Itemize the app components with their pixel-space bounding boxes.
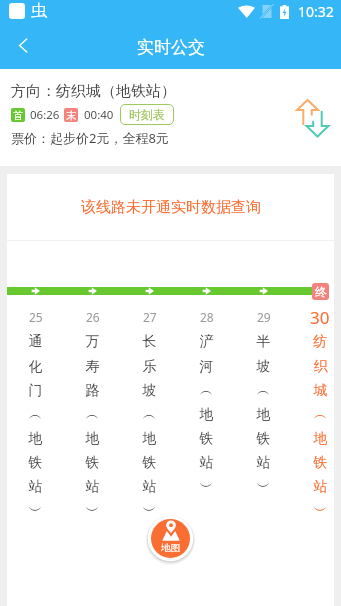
button[interactable]: Back <box>0 22 47 69</box>
staticText: 末 <box>66 109 76 122</box>
staticText: 通化门︵地铁站︶ <box>28 333 43 519</box>
staticText: 半坡︵地铁站︶ <box>256 333 271 495</box>
staticText: 10:32 <box>298 2 334 21</box>
staticText: 00:40 <box>84 107 114 123</box>
staticText: 06:26 <box>30 107 60 123</box>
staticText: 方向：纺织城（地铁站） <box>11 82 176 101</box>
staticText: 长乐坡︵地铁站︶ <box>142 333 157 519</box>
button[interactable]: 26 <box>64 304 121 519</box>
staticText: 30 <box>310 306 330 329</box>
button[interactable]: 25 <box>7 304 64 519</box>
staticText: 浐河︵地铁站︶ <box>199 333 214 495</box>
staticText: 26 <box>86 309 100 325</box>
staticText: 票价：起步价2元，全程8元 <box>11 129 169 147</box>
staticText: 终 <box>315 284 327 299</box>
staticText: 实时公交 <box>137 37 205 58</box>
staticText: 28 <box>200 309 214 325</box>
button[interactable]: Switch direction <box>296 99 331 138</box>
button[interactable]: 时刻表 <box>120 104 174 125</box>
staticText: 首 <box>13 109 23 122</box>
staticText: 25 <box>29 309 43 325</box>
staticText: 地图 <box>161 542 180 554</box>
staticText: 虫 <box>31 1 47 21</box>
staticText: 时刻表 <box>129 107 165 122</box>
staticText: 27 <box>143 309 157 325</box>
staticText: 纺织城︵地铁站︶ <box>313 333 328 519</box>
button[interactable]: 28 <box>178 304 235 495</box>
button[interactable]: 29 <box>235 304 292 495</box>
staticText: 该线路未开通实时数据查询 <box>81 198 261 217</box>
button[interactable]: 30 <box>292 304 341 519</box>
button[interactable]: 地图 Map <box>146 514 195 563</box>
staticText: 29 <box>257 309 271 325</box>
button[interactable]: 27 <box>121 304 178 519</box>
staticText: 万寿路︵地铁站︶ <box>85 333 100 519</box>
